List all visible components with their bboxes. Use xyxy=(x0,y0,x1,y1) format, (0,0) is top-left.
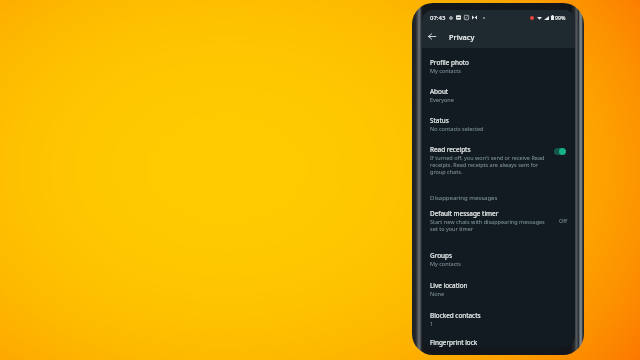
button[interactable]: Fingerprint lock xyxy=(422,335,575,347)
button[interactable]: Back xyxy=(422,25,441,48)
staticText: Disappearing messages xyxy=(430,194,498,202)
staticText: 99% xyxy=(555,14,566,21)
staticText: 1 xyxy=(430,320,434,327)
staticText: My contacts xyxy=(430,260,461,267)
staticText: Off xyxy=(559,217,568,224)
button[interactable]: Default message timer xyxy=(422,202,575,236)
staticText: Default message timer xyxy=(430,209,499,218)
staticText: No contacts selected xyxy=(430,125,484,132)
staticText: Everyone xyxy=(430,96,454,103)
staticText: About xyxy=(430,87,449,96)
staticText: My contacts xyxy=(430,67,461,74)
staticText: Privacy xyxy=(449,32,475,42)
staticText: 07:43 xyxy=(430,14,446,22)
button[interactable]: Groups xyxy=(422,247,575,271)
button[interactable]: About xyxy=(422,83,575,107)
button[interactable]: Read receipts xyxy=(422,141,575,179)
button[interactable]: Status xyxy=(422,112,575,136)
button[interactable]: Blocked contacts xyxy=(422,307,575,331)
staticText: None xyxy=(430,290,445,297)
button[interactable]: Profile photo xyxy=(422,54,575,78)
staticText: Blocked contacts xyxy=(430,311,481,320)
staticText: Live location xyxy=(430,281,468,290)
button[interactable]: Live location xyxy=(422,277,575,301)
button[interactable]: Read receipts toggle xyxy=(554,148,566,155)
staticText: Groups xyxy=(430,251,452,260)
staticText: If turned off, you won't send or receive… xyxy=(430,154,553,175)
staticText: Fingerprint lock xyxy=(430,338,478,347)
staticText: Status xyxy=(430,116,449,125)
staticText: Start new chats with disappearing messag… xyxy=(430,218,553,232)
staticText: Read receipts xyxy=(430,145,471,154)
staticText: Profile photo xyxy=(430,58,469,67)
